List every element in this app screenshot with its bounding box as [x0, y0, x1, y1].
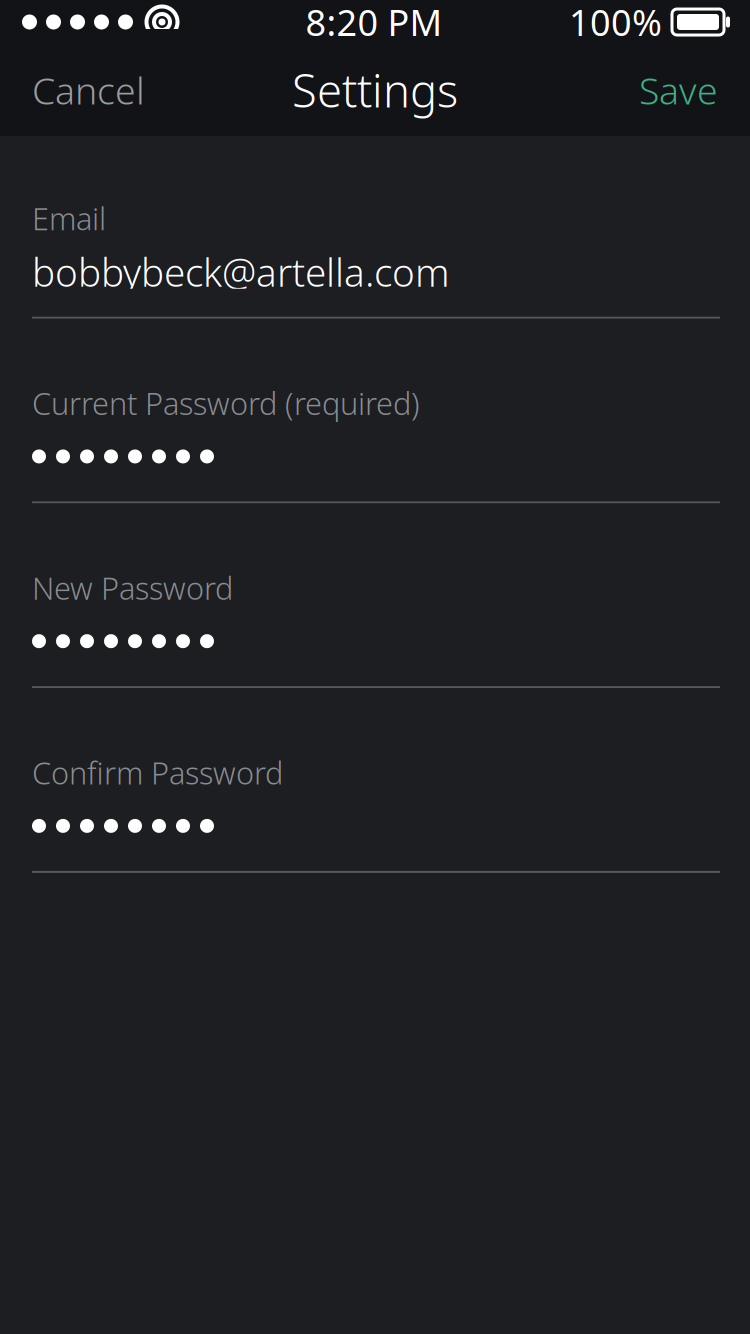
staticText: New Password	[32, 567, 233, 608]
button[interactable]: Email	[0, 198, 750, 319]
button[interactable]: Cancel	[0, 44, 177, 136]
button[interactable]: New Password	[0, 567, 750, 688]
staticText: Save	[639, 65, 718, 115]
staticText: 100%	[569, 0, 662, 46]
staticText: 8:20 PM	[305, 0, 442, 46]
button[interactable]: Current Password (required)	[0, 383, 750, 503]
staticText: Confirm Password	[32, 752, 283, 793]
button[interactable]: Save	[607, 44, 750, 136]
button[interactable]: Confirm Password	[0, 752, 750, 873]
staticText: Email	[32, 198, 106, 239]
staticText: bobbybeck@artella.com	[32, 246, 450, 297]
staticText: Current Password (required)	[32, 383, 420, 423]
staticText: Settings	[292, 60, 458, 120]
staticText: Cancel	[32, 65, 145, 115]
